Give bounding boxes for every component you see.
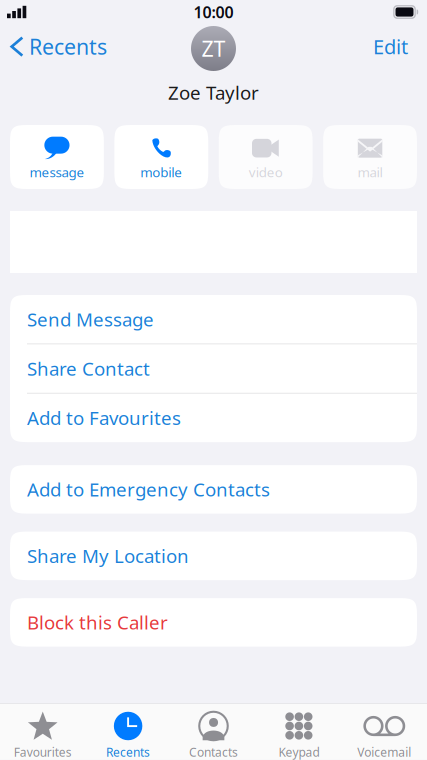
button[interactable]: Share Contact — [10, 344, 417, 393]
staticText: Send Message — [27, 307, 154, 332]
staticText: Add to Emergency Contacts — [27, 477, 270, 502]
button[interactable]: Recents — [0, 27, 107, 66]
button[interactable]: Send Message — [10, 295, 417, 343]
button[interactable]: mail — [323, 125, 417, 189]
button[interactable]: Voicemail — [342, 704, 427, 760]
staticText: message — [29, 163, 84, 181]
staticText: Add to Favourites — [27, 405, 181, 430]
button[interactable]: message — [10, 125, 104, 189]
staticText: Share Contact — [27, 356, 150, 381]
staticText: Voicemail — [357, 744, 411, 760]
button[interactable]: video — [219, 125, 313, 189]
staticText: Keypad — [278, 744, 319, 760]
staticText: Recents — [29, 32, 107, 61]
staticText: Contacts — [189, 744, 238, 760]
button[interactable]: Add to Favourites — [10, 394, 417, 442]
button[interactable]: Block this Caller — [10, 598, 417, 647]
button[interactable]: Favourites — [0, 704, 85, 760]
button[interactable]: Edit — [373, 28, 427, 65]
staticText: mobile — [140, 163, 182, 181]
staticText: Recents — [106, 744, 150, 760]
staticText: Block this Caller — [27, 610, 168, 635]
button[interactable]: mobile — [114, 125, 208, 189]
staticText: Edit — [373, 33, 408, 60]
staticText: mail — [358, 163, 383, 181]
button[interactable]: Recents — [85, 704, 171, 760]
staticText: Zoe Taylor — [168, 80, 259, 105]
staticText: video — [249, 163, 283, 181]
staticText: 10:00 — [193, 1, 233, 23]
button[interactable]: Share My Location — [10, 532, 417, 580]
staticText: Favourites — [14, 744, 72, 760]
button[interactable]: Contacts — [171, 704, 256, 760]
button[interactable]: Keypad — [256, 704, 342, 760]
staticText: Share My Location — [27, 543, 189, 568]
staticText: ZT — [201, 34, 225, 63]
button[interactable]: Add to Emergency Contacts — [10, 465, 417, 514]
